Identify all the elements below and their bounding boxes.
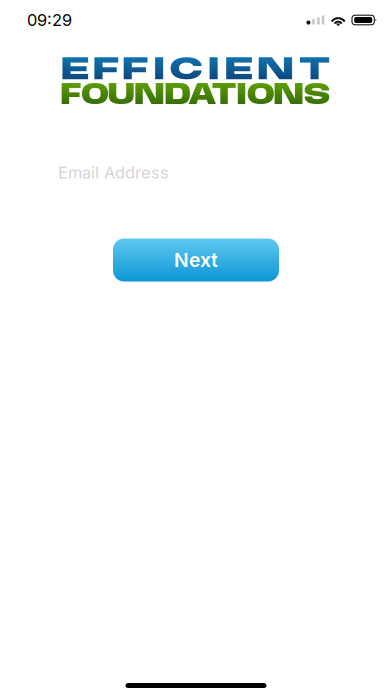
button[interactable]: Next [113, 238, 279, 281]
staticText: 09:29 [27, 10, 72, 30]
staticText: Email Address [58, 163, 169, 182]
staticText: Next [174, 248, 218, 272]
